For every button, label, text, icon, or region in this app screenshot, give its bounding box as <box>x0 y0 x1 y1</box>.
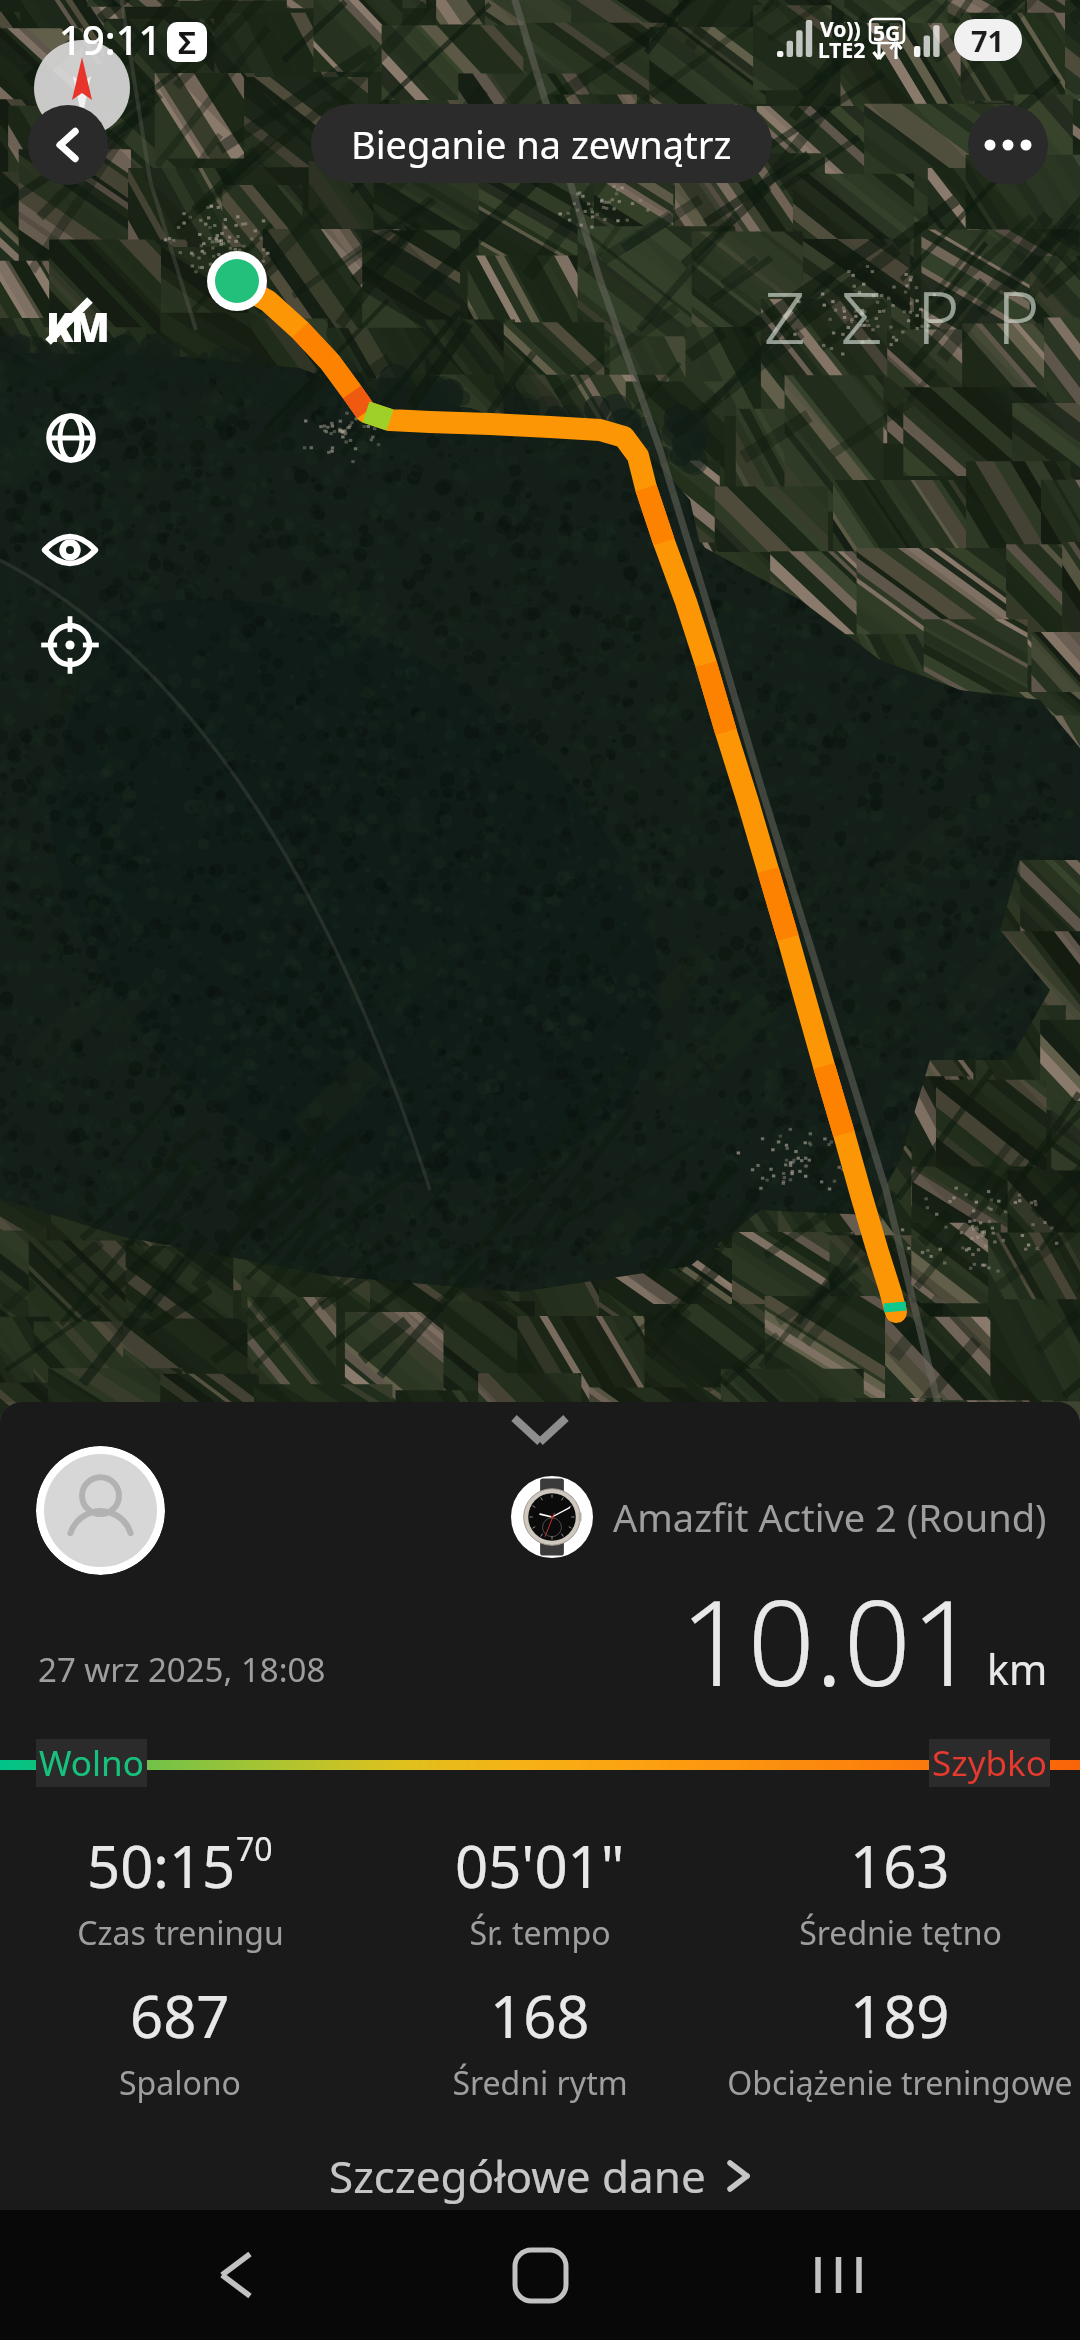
staticText: P <box>997 267 1040 365</box>
button[interactable]: Show route points <box>38 518 102 582</box>
button[interactable]: Amazfit Active 2 (Round) <box>511 1476 1047 1558</box>
staticText: 05'01" <box>455 1826 625 1905</box>
staticText: 70 <box>236 1827 273 1871</box>
staticText: Spalono <box>119 2061 241 2105</box>
button[interactable]: Bieganie na zewnątrz <box>311 104 772 183</box>
button[interactable]: Toggle kilometre markers <box>34 292 106 354</box>
staticText: 10.01 <box>680 1560 979 1721</box>
button[interactable]: Szczegółowe dane <box>0 2140 1080 2210</box>
staticText: Σ <box>841 267 883 365</box>
button[interactable]: Compass <box>34 40 130 136</box>
staticText: Wolno <box>39 1739 144 1787</box>
button[interactable]: 687 <box>0 1976 360 2105</box>
staticText: Szybko <box>932 1739 1047 1787</box>
button[interactable]: Map type <box>39 406 103 470</box>
staticText: LTE2 <box>818 36 866 65</box>
button[interactable]: Back <box>176 2210 296 2340</box>
staticText: Szczegółowe dane <box>329 2146 706 2206</box>
button[interactable]: Profile <box>36 1446 165 1575</box>
button[interactable]: 189 <box>720 1976 1080 2105</box>
staticText: Średnie tętno <box>799 1911 1002 1955</box>
staticText: km <box>987 1641 1048 1697</box>
staticText: Vo)) <box>820 15 861 44</box>
staticText: Obciążenie treningowe <box>727 2061 1073 2105</box>
staticText: 163 <box>850 1826 950 1905</box>
staticText: 50:15 <box>87 1826 236 1905</box>
staticText: P <box>917 267 960 365</box>
button[interactable]: 05'01" <box>360 1826 720 1955</box>
staticText: 19:11 <box>59 12 162 66</box>
staticText: 27 wrz 2025, 18:08 <box>38 1647 326 1692</box>
staticText: 189 <box>850 1976 950 2055</box>
button[interactable]: Recenter map <box>38 613 102 677</box>
staticText: Śr. tempo <box>469 1911 611 1955</box>
button[interactable]: Home <box>480 2210 600 2340</box>
staticText: KM <box>46 299 108 353</box>
staticText: Σ <box>178 22 196 61</box>
button[interactable]: Collapse map <box>480 1402 600 1458</box>
staticText: Amazfit Active 2 (Round) <box>613 1491 1047 1543</box>
button[interactable]: 168 <box>360 1976 720 2105</box>
staticText: Bieganie na zewnątrz <box>351 118 732 170</box>
staticText: 71 <box>971 21 1005 60</box>
staticText: Z <box>764 267 806 365</box>
staticText: Czas treningu <box>77 1911 284 1955</box>
staticText: 5G <box>873 19 901 43</box>
button[interactable]: Recent apps <box>778 2210 898 2340</box>
staticText: 168 <box>490 1976 590 2055</box>
button[interactable]: More options <box>968 105 1048 185</box>
button[interactable]: 50:15 <box>0 1826 360 1955</box>
button[interactable]: Back <box>28 105 108 185</box>
staticText: 687 <box>130 1976 230 2055</box>
staticText: Średni rytm <box>452 2061 628 2105</box>
button[interactable]: 163 <box>720 1826 1080 1955</box>
